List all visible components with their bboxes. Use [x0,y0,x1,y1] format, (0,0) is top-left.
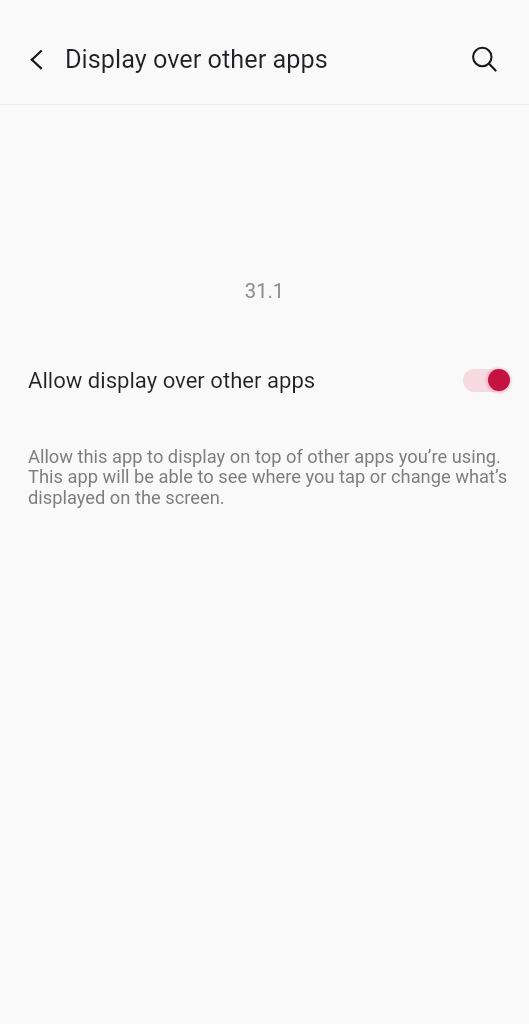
staticText: 31.1 [0,279,529,303]
staticText: Allow display over other apps [28,367,316,393]
button[interactable]: Search [460,37,504,81]
staticText: Allow this app to display on top of othe… [28,446,508,509]
button[interactable]: Allow display over other apps, on [457,364,509,396]
staticText: Display over other apps [65,45,328,75]
button[interactable]: Navigate up [15,38,59,82]
button[interactable]: Allow display over other apps [0,350,529,410]
